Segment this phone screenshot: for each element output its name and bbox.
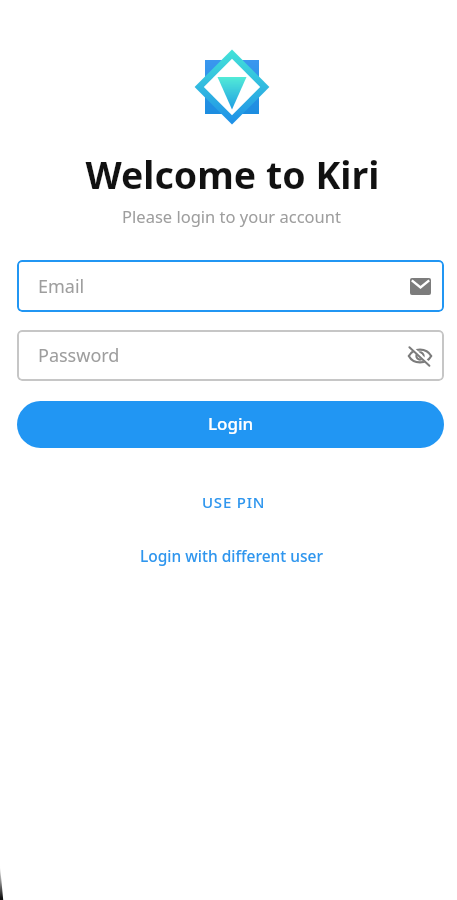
button[interactable]: Login: [17, 401, 444, 448]
button[interactable]: Email: [17, 260, 444, 312]
staticText: USE PIN: [202, 492, 266, 512]
button[interactable]: Show password: [407, 343, 433, 369]
staticText: Login with different user: [140, 545, 323, 566]
staticText: Email: [38, 274, 85, 299]
button[interactable]: Email: [407, 273, 433, 299]
staticText: Welcome to Kiri: [4, 149, 457, 200]
staticText: Login: [208, 412, 254, 435]
staticText: Password: [38, 343, 120, 368]
button[interactable]: USE PIN: [192, 488, 276, 516]
staticText: Please login to your account: [3, 205, 457, 227]
button[interactable]: Login with different user: [130, 541, 333, 570]
button[interactable]: Password: [17, 330, 444, 381]
